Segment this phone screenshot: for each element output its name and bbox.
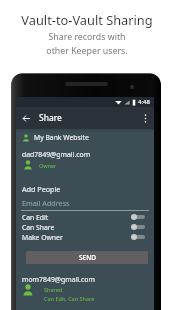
button[interactable]: My Bank Website bbox=[22, 133, 89, 142]
staticText: Owner bbox=[39, 162, 57, 169]
staticText: Can Edit, Can Share bbox=[44, 295, 95, 302]
staticText: Email Address bbox=[22, 198, 70, 208]
button[interactable]: More options bbox=[137, 110, 153, 126]
staticText: Can Share bbox=[22, 223, 55, 232]
staticText: other Keeper users. bbox=[46, 45, 128, 57]
staticText: dad7849@gmail.com bbox=[22, 150, 91, 159]
staticText: 4:48 bbox=[138, 98, 150, 106]
staticText: Share bbox=[39, 112, 62, 124]
staticText: Add People bbox=[22, 184, 61, 194]
staticText: Make Owner bbox=[22, 233, 63, 242]
staticText: SEND bbox=[79, 253, 96, 262]
button[interactable]: Can Share bbox=[22, 222, 145, 232]
button[interactable]: Can Edit bbox=[22, 212, 145, 222]
button[interactable]: Back bbox=[18, 110, 34, 126]
staticText: Shared bbox=[44, 286, 63, 293]
button[interactable]: Make Owner bbox=[22, 232, 145, 242]
staticText: My Bank Website bbox=[34, 133, 89, 142]
staticText: Can Edit bbox=[22, 213, 49, 222]
staticText: mom7849@gmail.com bbox=[22, 275, 95, 284]
staticText: Share records with bbox=[48, 31, 126, 43]
button[interactable]: SEND bbox=[26, 251, 148, 264]
staticText: Vault-to-Vault Sharing bbox=[21, 11, 153, 28]
